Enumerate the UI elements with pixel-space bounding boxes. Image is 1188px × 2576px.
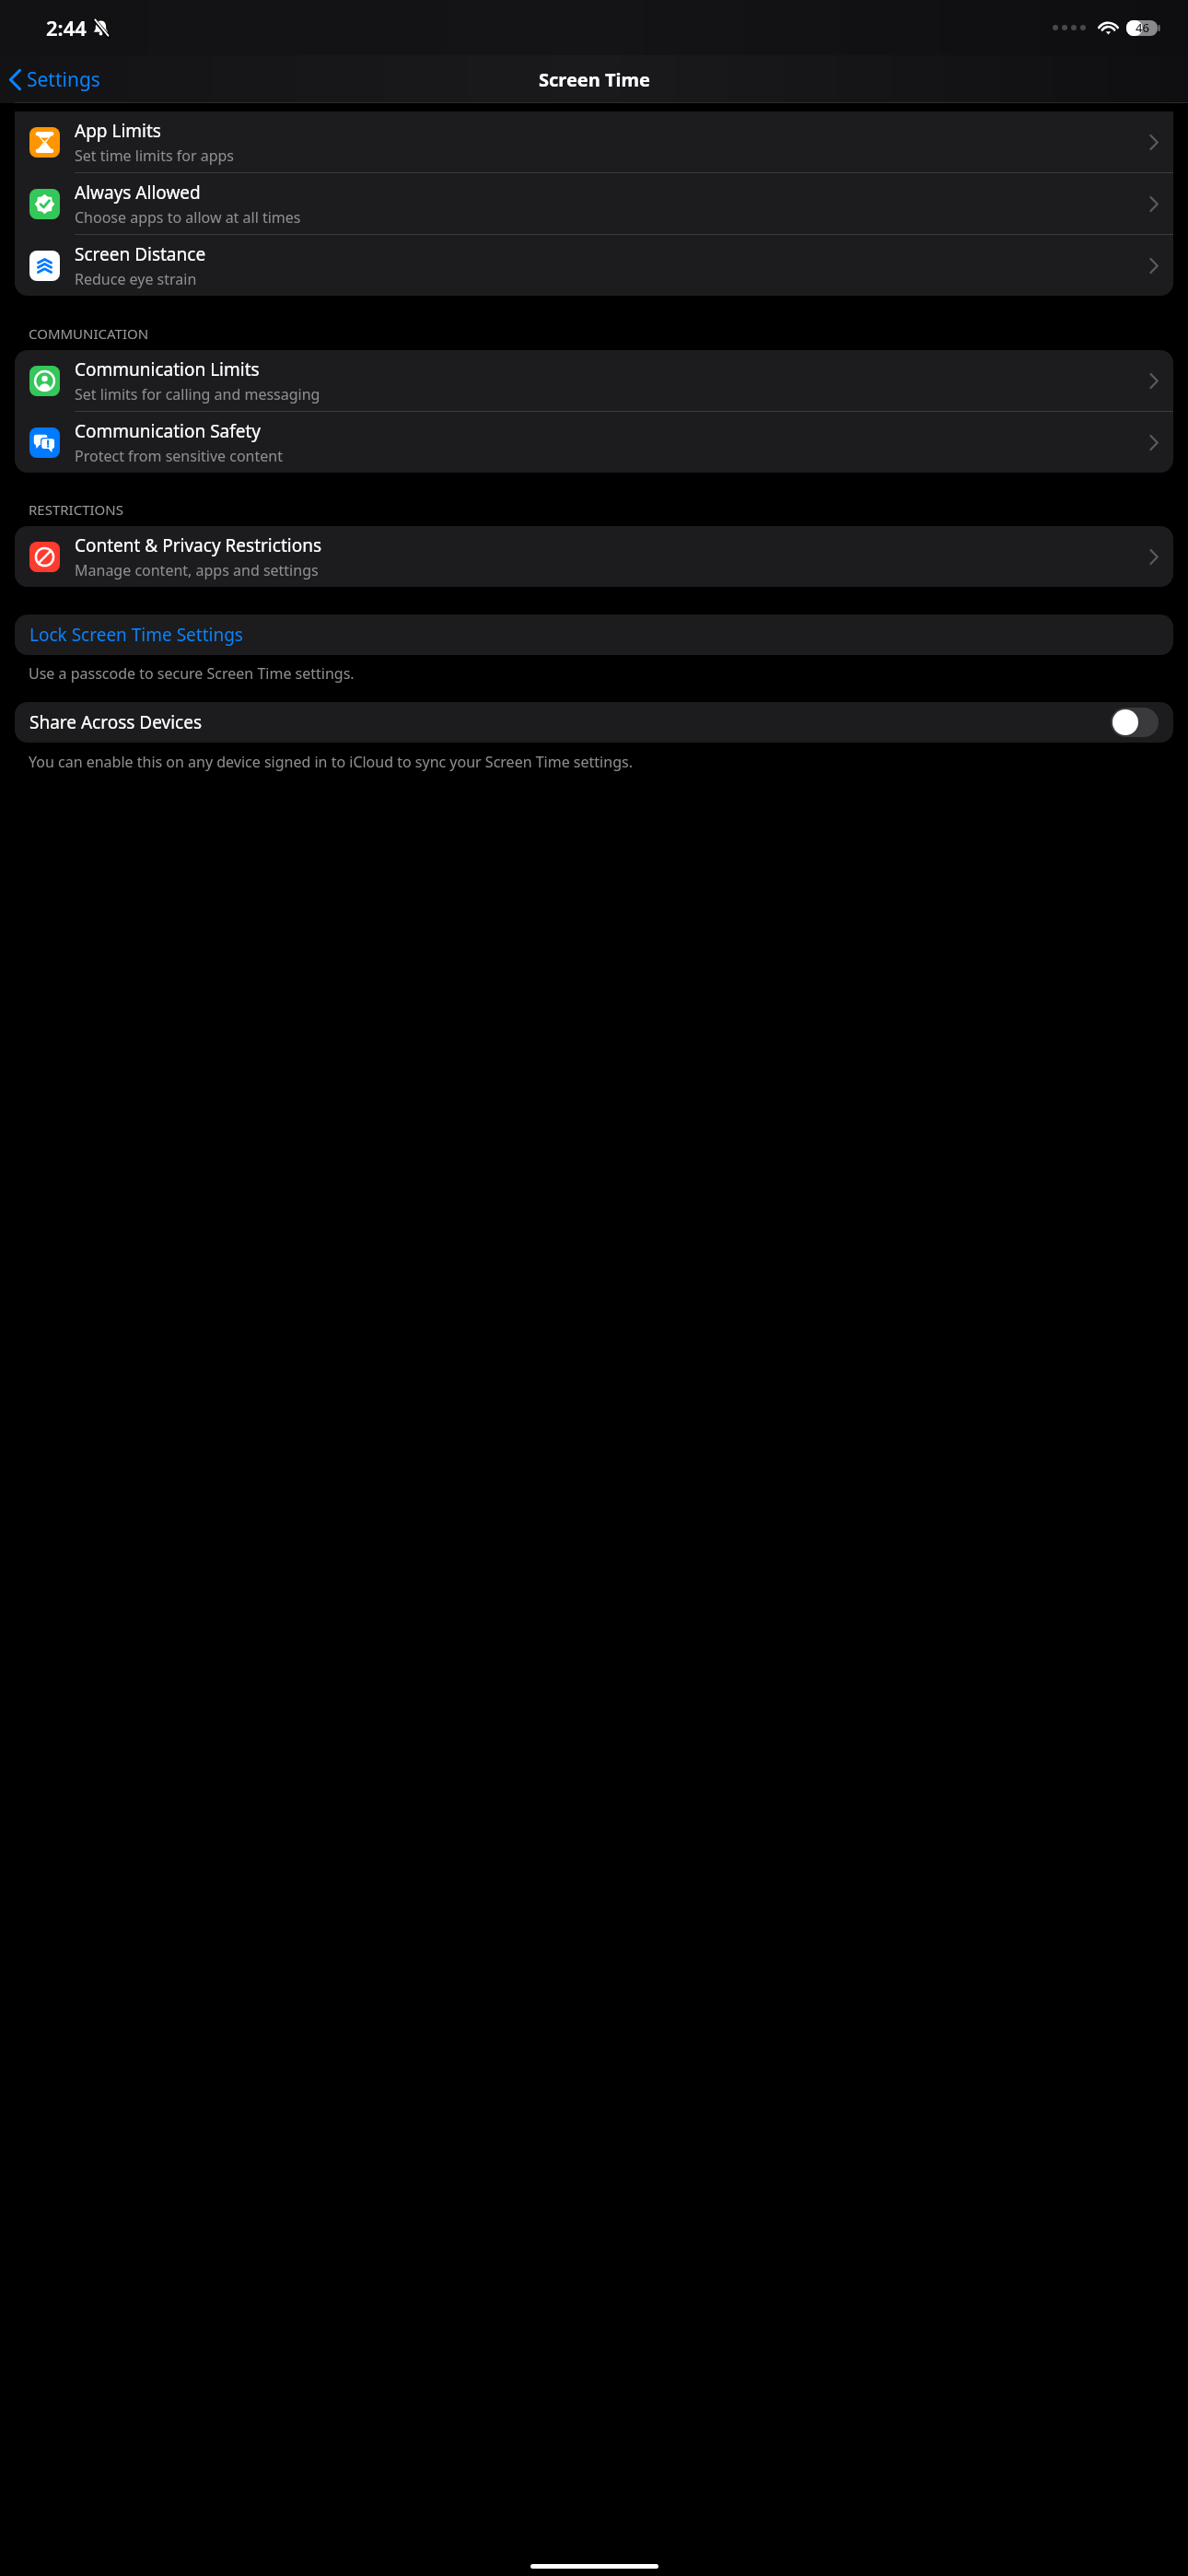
staticText: Content & Privacy Restrictions <box>75 533 321 557</box>
staticText: COMMUNICATION <box>29 324 149 343</box>
staticText: RESTRICTIONS <box>29 500 123 519</box>
staticText: Settings <box>27 66 100 93</box>
staticText: Lock Screen Time Settings <box>29 623 243 647</box>
button[interactable]: Always Allowed <box>15 173 1173 235</box>
button[interactable]: Screen Distance <box>15 235 1173 296</box>
staticText: Screen Time <box>539 67 650 92</box>
staticText: App Limits <box>75 119 161 143</box>
staticText: Set time limits for apps <box>75 146 235 166</box>
button[interactable]: Communication Safety <box>15 412 1173 473</box>
button[interactable]: Content & Privacy Restrictions <box>15 526 1173 587</box>
staticText: Always Allowed <box>75 181 201 205</box>
staticText: Screen Distance <box>75 242 206 266</box>
button[interactable]: App Limits <box>15 111 1173 173</box>
staticText: Use a passcode to secure Screen Time set… <box>29 663 355 684</box>
staticText: Share Across Devices <box>29 710 203 734</box>
staticText: Reduce eye strain <box>75 269 197 289</box>
staticText: You can enable this on any device signed… <box>29 752 633 772</box>
button[interactable]: Settings <box>0 61 111 99</box>
staticText: Protect from sensitive content <box>75 446 283 466</box>
button[interactable]: Lock Screen Time Settings <box>15 615 1173 655</box>
staticText: Communication Limits <box>75 357 260 381</box>
staticText: Choose apps to allow at all times <box>75 207 301 228</box>
staticText: 2:44 <box>46 14 87 41</box>
staticText: Manage content, apps and settings <box>75 560 319 580</box>
staticText: Communication Safety <box>75 419 262 443</box>
staticText: Set limits for calling and messaging <box>75 384 320 404</box>
staticText: 46 <box>1136 19 1149 36</box>
button[interactable]: Share Across Devices toggle <box>1111 708 1159 737</box>
button[interactable]: Share Across Devices <box>15 702 1173 743</box>
button[interactable]: Communication Limits <box>15 350 1173 412</box>
